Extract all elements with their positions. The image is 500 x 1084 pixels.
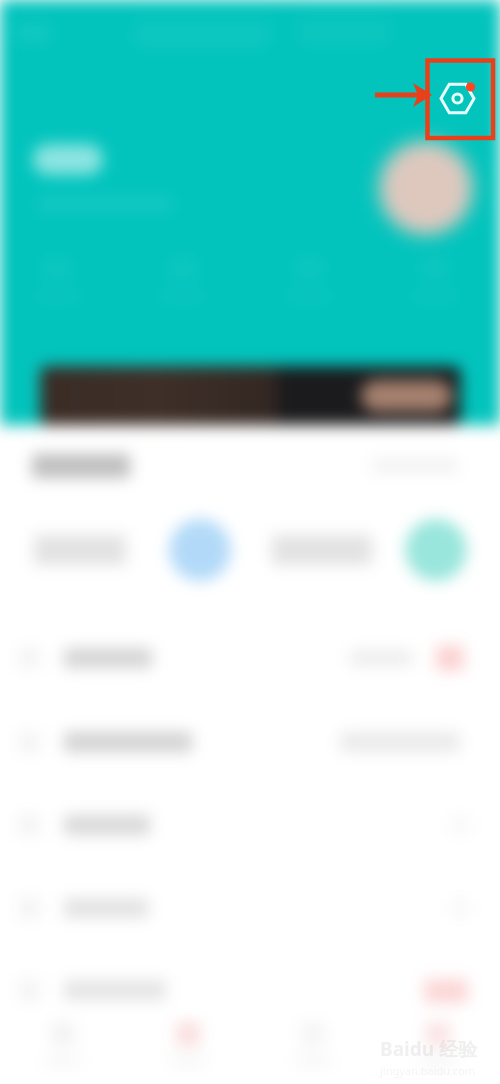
button[interactable]: Me — [375, 1012, 500, 1084]
button[interactable]: List item — [0, 784, 500, 866]
button[interactable]: List item — [0, 949, 500, 1031]
button[interactable]: List item — [0, 617, 500, 699]
button[interactable]: List item — [0, 701, 500, 783]
button[interactable]: Discover — [125, 1012, 250, 1084]
button[interactable]: Profile avatar — [369, 131, 483, 245]
button[interactable]: List item — [0, 867, 500, 949]
button[interactable]: Settings — [433, 74, 482, 123]
button[interactable] — [40, 366, 461, 425]
staticText: Baidu 经验 — [380, 1036, 477, 1062]
button[interactable]: Data — [405, 519, 467, 581]
staticText: jingyan.baidu.com — [380, 1063, 476, 1078]
button[interactable]: Balance — [169, 519, 231, 581]
